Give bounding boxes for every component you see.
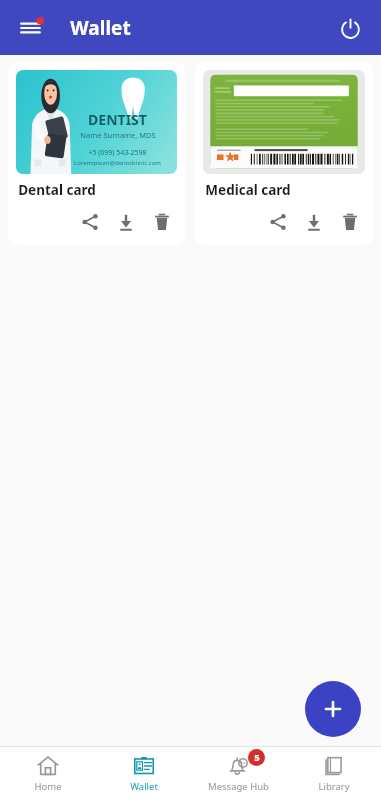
staticText: Library: [318, 780, 350, 793]
button[interactable]: Home: [0, 747, 96, 800]
staticText: Loremipsum@dentolclinic.com: [74, 159, 161, 167]
button[interactable]: Menu: [12, 8, 52, 48]
staticText: Wallet: [130, 780, 158, 793]
button[interactable]: Share: [75, 207, 105, 237]
button[interactable]: Power: [331, 9, 369, 47]
staticText: Wallet: [70, 15, 131, 41]
button[interactable]: Delete: [147, 207, 177, 237]
staticText: Name Surname, MDS: [80, 130, 156, 140]
button[interactable]: DENTIST: [8, 62, 185, 245]
button[interactable]: Medical card: [195, 62, 373, 245]
button[interactable]: Library: [286, 747, 381, 800]
staticText: Dental card: [18, 181, 96, 199]
button[interactable]: Wallet: [96, 747, 191, 800]
button[interactable]: Share: [263, 207, 293, 237]
button[interactable]: Delete: [335, 207, 365, 237]
staticText: +5 (099) 543-2598: [88, 148, 147, 158]
button[interactable]: 5: [191, 747, 286, 800]
staticText: Message Hub: [208, 780, 269, 793]
staticText: DENTIST: [88, 110, 147, 129]
staticText: Medical card: [205, 181, 291, 199]
staticText: Home: [34, 780, 62, 793]
staticText: 5: [254, 751, 260, 764]
button[interactable]: Add card: [305, 681, 361, 737]
button[interactable]: Download: [111, 207, 141, 237]
button[interactable]: Download: [299, 207, 329, 237]
